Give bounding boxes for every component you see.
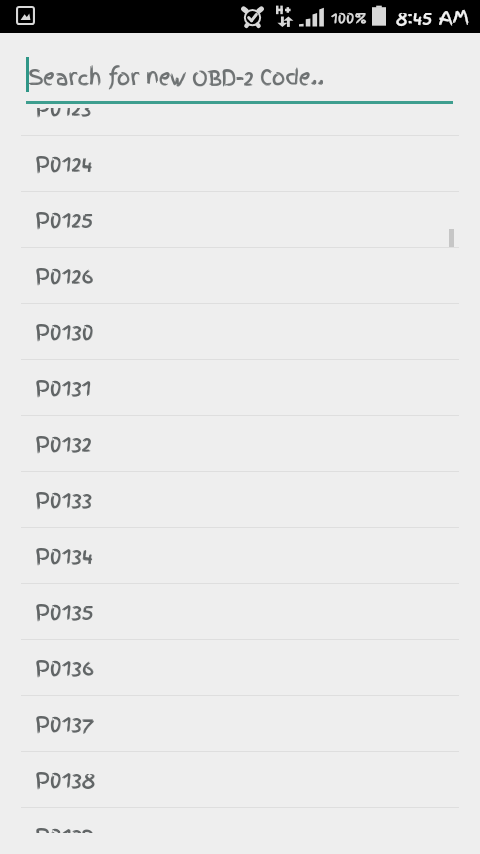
button[interactable]: P0130 (0, 304, 480, 360)
staticText: P0138 (35, 763, 96, 795)
staticText: 100% (331, 7, 367, 29)
staticText: P0136 (35, 651, 95, 683)
staticText: P0125 (35, 203, 94, 235)
staticText: P0137 (35, 707, 95, 739)
button[interactable]: P0137 (0, 696, 480, 752)
button[interactable]: Search for new OBD-2 Code.. (0, 0, 480, 104)
staticText: P0131 (35, 371, 92, 403)
button[interactable]: P0124 (0, 136, 480, 192)
staticText: P0123 (35, 108, 92, 123)
staticText: P0139 (35, 819, 95, 833)
button[interactable]: P0135 (0, 584, 480, 640)
button[interactable]: P0136 (0, 640, 480, 696)
staticText: Search for new OBD-2 Code.. (28, 61, 324, 93)
other: Screenshot saved (16, 6, 35, 25)
button[interactable]: P0133 (0, 472, 480, 528)
button[interactable]: P0138 (0, 752, 480, 808)
button[interactable]: P0126 (0, 248, 480, 304)
staticText: P0124 (35, 147, 93, 179)
button[interactable]: P0125 (0, 192, 480, 248)
button[interactable]: P0134 (0, 528, 480, 584)
staticText: P0135 (35, 595, 94, 627)
button[interactable]: P0123 (0, 108, 480, 136)
button[interactable]: P0131 (0, 360, 480, 416)
button[interactable]: P0132 (0, 416, 480, 472)
staticText: P0130 (35, 315, 94, 347)
staticText: P0134 (35, 539, 94, 571)
staticText: P0132 (35, 427, 92, 459)
staticText: 8:45 AM (396, 4, 469, 31)
staticText: P0126 (35, 259, 94, 291)
staticText: P0133 (35, 483, 93, 515)
button[interactable]: P0139 (0, 808, 480, 833)
